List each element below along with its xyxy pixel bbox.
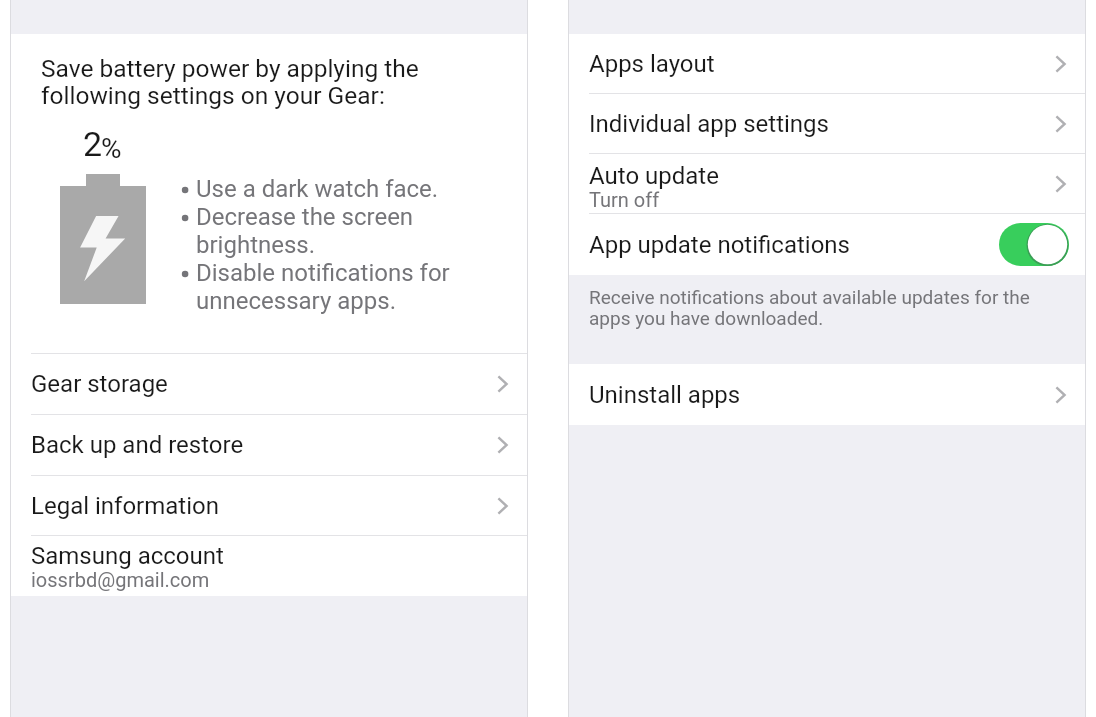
staticText: Samsung account	[31, 542, 224, 570]
button[interactable]: Uninstall apps	[568, 364, 1086, 425]
button[interactable]: Apps layout	[568, 34, 1086, 93]
button[interactable]: Legal information	[10, 476, 528, 535]
staticText: Uninstall apps	[589, 381, 741, 409]
staticText: 2	[83, 124, 103, 164]
button[interactable]: Toggle app update notifications	[999, 223, 1069, 266]
button[interactable]: App update notifications	[568, 214, 1086, 275]
button[interactable]: Individual app settings	[568, 94, 1086, 153]
button[interactable]: Auto update	[568, 154, 1086, 213]
staticText: iossrbd@gmail.com	[31, 568, 210, 591]
staticText: Disable notifications for unnecessary ap…	[196, 259, 450, 315]
staticText: Individual app settings	[589, 110, 829, 138]
staticText: Turn off	[589, 188, 660, 211]
staticText: Apps layout	[589, 50, 715, 78]
staticText: Save battery power by applying the follo…	[41, 54, 419, 110]
staticText: Auto update	[589, 162, 719, 190]
staticText: Use a dark watch face.	[196, 175, 439, 203]
button[interactable]: Back up and restore	[10, 415, 528, 475]
staticText: Legal information	[31, 492, 219, 520]
button[interactable]: Gear storage	[10, 354, 528, 414]
button[interactable]: Samsung account	[10, 536, 528, 596]
staticText: Gear storage	[31, 370, 168, 398]
staticText: Receive notifications about available up…	[589, 286, 1030, 330]
staticText: App update notifications	[589, 231, 850, 259]
staticText: Back up and restore	[31, 431, 244, 459]
staticText: Decrease the screen brightness.	[196, 203, 414, 259]
staticText: %	[101, 132, 122, 165]
